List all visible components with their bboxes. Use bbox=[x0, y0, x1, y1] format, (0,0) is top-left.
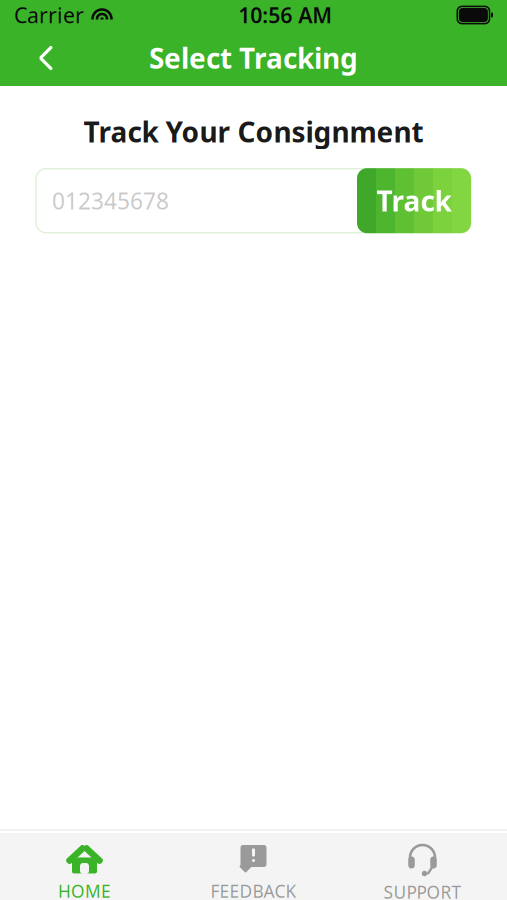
button[interactable]: SUPPORT bbox=[338, 842, 507, 900]
staticText: FEEDBACK bbox=[210, 879, 296, 900]
staticText: Track Your Consignment bbox=[83, 113, 423, 150]
button[interactable]: Track bbox=[357, 168, 471, 233]
staticText: 10:56 AM bbox=[238, 1, 332, 29]
button[interactable]: Back bbox=[22, 34, 70, 82]
staticText: Track bbox=[376, 182, 451, 219]
staticText: Select Tracking bbox=[149, 39, 358, 77]
staticText: 012345678 bbox=[52, 186, 169, 216]
button[interactable]: HOME bbox=[0, 843, 169, 900]
staticText: Carrier bbox=[14, 1, 84, 29]
button[interactable]: FEEDBACK bbox=[169, 843, 338, 900]
staticText: HOME bbox=[58, 879, 111, 900]
staticText: SUPPORT bbox=[383, 880, 461, 900]
